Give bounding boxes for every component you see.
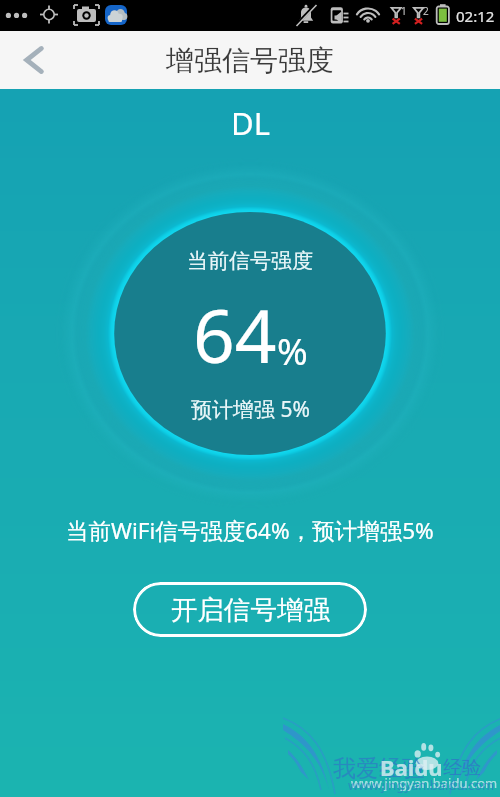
staticText: Baidu [380, 752, 443, 782]
staticText: 64 [193, 285, 277, 384]
staticText: % [277, 325, 308, 375]
staticText: 经验 [443, 756, 481, 780]
staticText: 增强信号强度 [166, 43, 334, 78]
staticText: 我爱经验 [333, 754, 425, 783]
staticText: 开启信号增强 [171, 593, 330, 626]
staticText: 02:12 [456, 6, 495, 26]
staticText: www.jingyan.baidu.com [351, 774, 498, 792]
button[interactable]: Back [6, 31, 64, 89]
staticText: 当前信号强度 [187, 248, 313, 274]
staticText: 当前WiFi信号强度64%，预计增强5% [66, 515, 434, 546]
button[interactable]: 开启信号增强 [133, 582, 367, 637]
staticText: 1 [401, 4, 407, 18]
staticText: DL [231, 102, 270, 144]
staticText: www.jingyan.baidu.com [348, 776, 495, 794]
staticText: 2 [423, 4, 429, 18]
staticText: 预计增强 5% [191, 395, 310, 424]
